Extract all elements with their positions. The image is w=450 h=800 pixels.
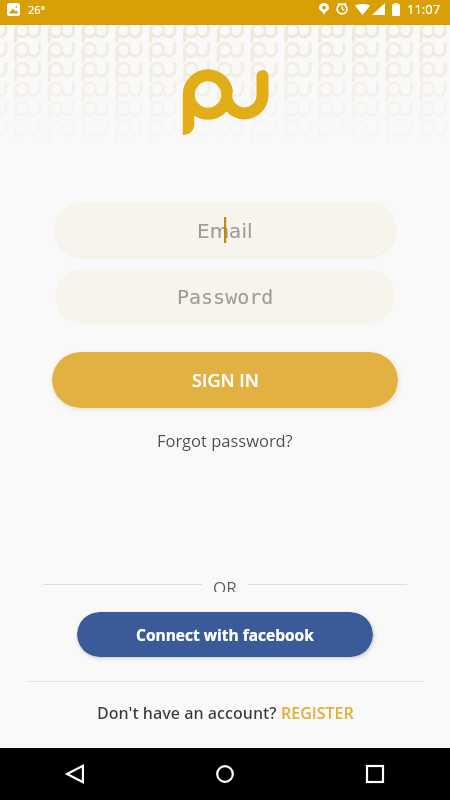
button[interactable]: Connect with facebook: [77, 612, 373, 657]
staticText: OR: [213, 576, 237, 592]
staticText: Password: [177, 285, 274, 308]
button[interactable]: Recents: [300, 748, 450, 800]
staticText: 26°: [28, 2, 46, 17]
button[interactable]: REGISTER: [281, 702, 354, 724]
staticText: Forgot password?: [157, 429, 293, 451]
staticText: Don't have an account?: [97, 702, 281, 724]
staticText: SIGN IN: [192, 368, 259, 393]
staticText: 11:07: [407, 0, 441, 18]
button[interactable]: Home: [150, 748, 300, 800]
button[interactable]: Password: [55, 269, 395, 324]
button[interactable]: Forgot password?: [147, 423, 303, 457]
staticText: Connect with facebook: [136, 624, 314, 645]
staticText: Email: [197, 219, 253, 242]
button[interactable]: Email: [55, 202, 395, 257]
button[interactable]: SIGN IN: [52, 352, 398, 408]
button[interactable]: Back: [0, 748, 150, 800]
staticText: REGISTER: [281, 702, 354, 724]
